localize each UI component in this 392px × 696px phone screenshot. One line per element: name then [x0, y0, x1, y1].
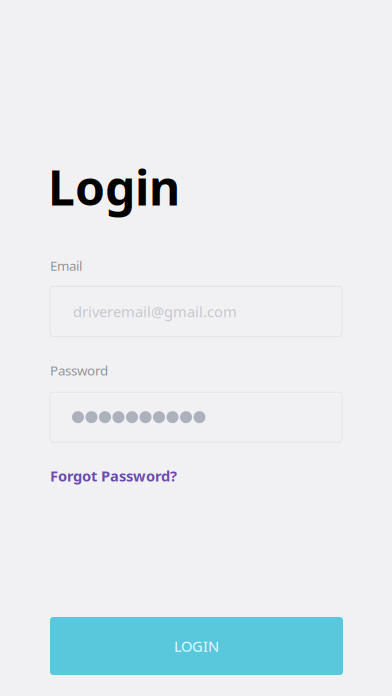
button[interactable]: LOGIN	[50, 617, 343, 675]
staticText: Login	[48, 155, 180, 219]
staticText: Email	[50, 257, 82, 274]
staticText: Password	[50, 361, 108, 379]
button[interactable]: Email address	[50, 286, 342, 336]
staticText: driveremail@gmail.com	[73, 302, 237, 321]
staticText: LOGIN	[174, 636, 219, 656]
button[interactable]: Forgot Password?	[50, 466, 177, 486]
staticText: Forgot Password?	[50, 466, 177, 486]
button[interactable]: Password	[50, 392, 342, 442]
